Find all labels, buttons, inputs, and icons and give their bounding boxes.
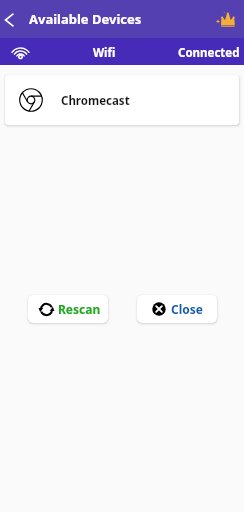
- staticText: Chromecast: [61, 93, 130, 109]
- staticText: Available Devices: [29, 10, 142, 28]
- staticText: Rescan: [58, 301, 101, 317]
- staticText: Close: [171, 301, 203, 317]
- button[interactable]: Rescan: [28, 295, 108, 323]
- staticText: Wifi: [93, 45, 116, 61]
- button[interactable]: Close: [137, 295, 217, 323]
- button[interactable]: Back: [0, 9, 20, 29]
- staticText: Connected: [178, 45, 240, 61]
- button[interactable]: Premium: [213, 7, 237, 31]
- button[interactable]: Chromecast: [5, 75, 239, 125]
